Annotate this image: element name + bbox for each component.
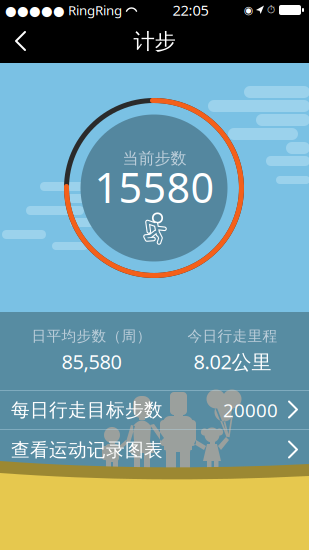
staticText: 查看运动记录图表: [11, 438, 163, 461]
staticText: ●●●●● RingRing: [5, 1, 122, 19]
button[interactable]: 查看运动记录图表: [0, 430, 309, 470]
staticText: 日平均步数（周）: [31, 327, 151, 345]
staticText: 15580: [94, 160, 214, 214]
staticText: 今日行走里程: [187, 327, 277, 345]
staticText: 计步: [133, 28, 175, 55]
staticText: 8.02公里: [193, 348, 271, 375]
staticText: 每日行走目标步数: [11, 398, 163, 421]
staticText: ⏱: [267, 5, 275, 15]
staticText: ◉: [244, 4, 253, 16]
button[interactable]: 每日行走目标步数: [0, 391, 309, 429]
staticText: 当前步数: [122, 149, 186, 168]
button[interactable]: Back: [0, 20, 40, 63]
staticText: 85,580: [61, 348, 121, 375]
staticText: 20000: [223, 398, 278, 422]
staticText: 22:05: [172, 0, 208, 20]
